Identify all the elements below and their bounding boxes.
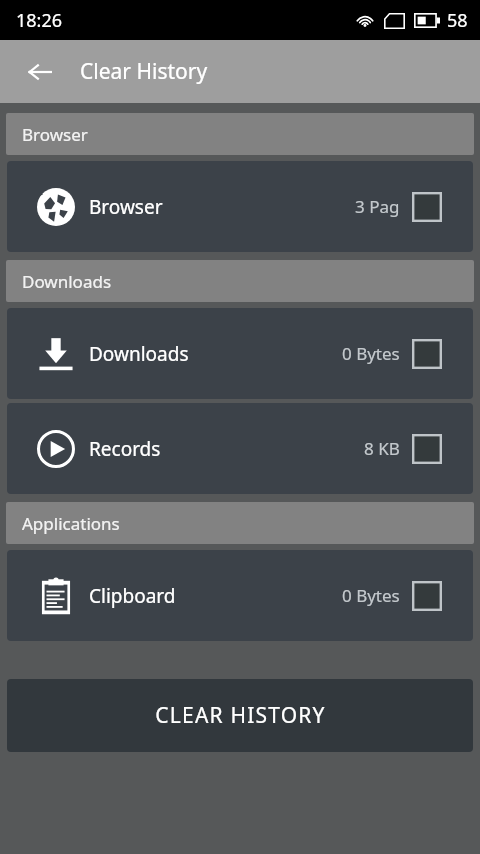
- button[interactable]: Select Clipboard: [412, 581, 442, 611]
- button[interactable]: Downloads: [7, 308, 473, 399]
- staticText: 58: [447, 8, 468, 33]
- button[interactable]: Back: [16, 48, 64, 96]
- staticText: Clipboard: [89, 583, 342, 609]
- button[interactable]: Clipboard: [7, 550, 473, 641]
- staticText: Downloads: [22, 270, 112, 293]
- button[interactable]: Select Downloads: [412, 339, 442, 369]
- staticText: Browser: [22, 123, 88, 146]
- staticText: 18:26: [16, 8, 63, 33]
- staticText: 8 KB: [364, 437, 400, 460]
- staticText: 0 Bytes: [342, 342, 400, 365]
- staticText: Downloads: [89, 341, 342, 367]
- staticText: Applications: [22, 512, 120, 535]
- staticText: CLEAR HISTORY: [155, 701, 326, 730]
- button[interactable]: Select Browser: [412, 192, 442, 222]
- staticText: Clear History: [80, 57, 208, 86]
- button[interactable]: Browser: [7, 161, 473, 252]
- button[interactable]: Select Records: [412, 434, 442, 464]
- staticText: 3 Pag: [355, 195, 400, 218]
- staticText: Browser: [89, 194, 355, 220]
- button[interactable]: CLEAR HISTORY: [7, 679, 473, 752]
- staticText: 0 Bytes: [342, 584, 400, 607]
- button[interactable]: Records: [7, 403, 473, 494]
- staticText: Records: [89, 436, 364, 462]
